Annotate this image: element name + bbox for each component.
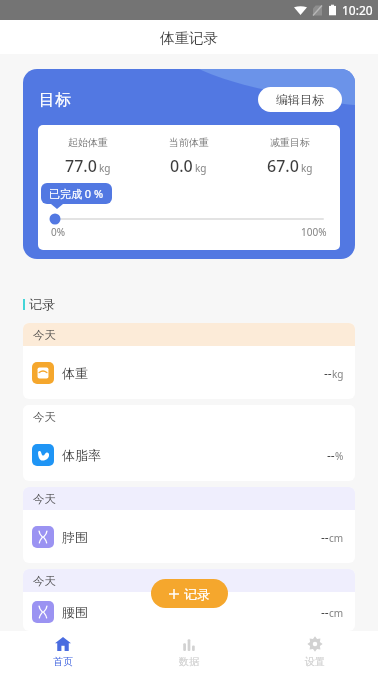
staticText: 记录 — [184, 586, 210, 602]
staticText: 数据 — [179, 655, 199, 668]
staticText: -- — [327, 447, 335, 463]
staticText: 今天 — [33, 328, 56, 342]
button[interactable]: 编辑目标 — [258, 87, 342, 112]
staticText: cm — [329, 531, 344, 545]
staticText: 设置 — [305, 655, 325, 668]
staticText: 0% — [51, 225, 66, 239]
staticText: 减重目标 — [270, 136, 310, 149]
button[interactable]: 体脂率 — [23, 428, 355, 481]
button[interactable]: 腰围 — [23, 592, 355, 631]
staticText: 100% — [301, 225, 327, 239]
button[interactable]: 记录 — [151, 579, 228, 608]
staticText: kg — [99, 161, 111, 175]
staticText: 已完成 0 % — [49, 186, 104, 201]
staticText: -- — [321, 529, 329, 545]
staticText: kg — [195, 161, 207, 175]
button[interactable]: 首页 — [0, 631, 126, 673]
button[interactable]: 脖围 — [23, 510, 355, 563]
staticText: 目标 — [39, 90, 71, 110]
staticText: 起始体重 — [68, 136, 108, 149]
staticText: 记录 — [29, 296, 55, 312]
staticText: 67.0 — [267, 155, 299, 177]
button[interactable]: 设置 — [252, 631, 378, 673]
staticText: 脖围 — [62, 529, 88, 545]
staticText: 体重 — [62, 365, 88, 381]
staticText: % — [335, 449, 344, 463]
staticText: 当前体重 — [169, 136, 209, 149]
staticText: -- — [324, 365, 332, 381]
button[interactable]: 体重 — [23, 346, 355, 399]
staticText: -- — [321, 604, 329, 620]
staticText: 编辑目标 — [276, 92, 324, 107]
staticText: kg — [332, 367, 344, 381]
staticText: 今天 — [33, 410, 56, 424]
staticText: 0.0 — [170, 155, 193, 177]
button[interactable]: 数据 — [126, 631, 252, 673]
staticText: 体重记录 — [160, 29, 218, 47]
staticText: 首页 — [53, 655, 73, 668]
staticText: 今天 — [33, 492, 56, 506]
staticText: 77.0 — [65, 155, 97, 177]
staticText: 10:20 — [342, 2, 373, 18]
staticText: kg — [301, 161, 313, 175]
staticText: 今天 — [33, 574, 56, 588]
staticText: cm — [329, 606, 344, 620]
staticText: 腰围 — [62, 604, 88, 620]
staticText: 体脂率 — [62, 447, 101, 463]
